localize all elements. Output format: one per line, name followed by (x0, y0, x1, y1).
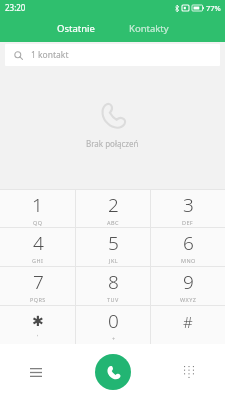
staticText: 0 (108, 308, 119, 334)
button[interactable]: Kontakty (119, 18, 179, 39)
staticText: GHI (32, 257, 44, 264)
button[interactable]: # (151, 306, 225, 344)
button[interactable]: Zadzwoń (95, 354, 131, 390)
staticText: TUV (107, 296, 119, 303)
staticText: ✱ (32, 313, 44, 329)
staticText: + (112, 335, 116, 342)
staticText: # (183, 312, 193, 332)
staticText: 4 (33, 230, 44, 256)
button[interactable]: 8 (76, 267, 150, 305)
staticText: 5 (108, 230, 119, 256)
staticText: 1 kontakt (31, 49, 69, 61)
staticText: 6 (183, 230, 194, 256)
staticText: MNO (181, 257, 196, 264)
staticText: 7 (33, 269, 44, 295)
staticText: PQRS (30, 296, 46, 303)
button[interactable]: 4 (0, 228, 75, 266)
staticText: 8 (108, 269, 119, 295)
button[interactable]: 5 (76, 228, 150, 266)
button[interactable]: 9 (151, 267, 225, 305)
staticText: JKL (109, 257, 118, 264)
staticText: 77% (206, 3, 221, 13)
button[interactable]: 1 kontakt (5, 44, 220, 66)
staticText: QQ (33, 219, 43, 226)
staticText: 3 (183, 192, 194, 218)
button[interactable]: 3 (151, 190, 225, 227)
button[interactable]: 0 (76, 306, 150, 344)
button[interactable]: Ostatnie (47, 18, 105, 39)
button[interactable]: 6 (151, 228, 225, 266)
staticText: 1 (32, 192, 43, 218)
staticText: Brak połączeń (86, 138, 139, 149)
staticText: 9 (183, 269, 194, 295)
staticText: 23:20 (5, 2, 26, 13)
button[interactable]: ✱ (0, 306, 75, 344)
staticText: , (37, 330, 39, 337)
staticText: Kontakty (129, 22, 169, 35)
button[interactable]: 7 (0, 267, 75, 305)
staticText: WXYZ (180, 296, 197, 303)
staticText: ABC (107, 219, 119, 226)
button[interactable]: Klawiatura (175, 358, 203, 386)
button[interactable]: Menu (22, 358, 50, 386)
button[interactable]: 2 (76, 190, 150, 227)
button[interactable]: 1 (0, 190, 75, 227)
staticText: 2 (108, 192, 119, 218)
staticText: DEF (182, 219, 194, 226)
staticText: Ostatnie (57, 22, 95, 35)
